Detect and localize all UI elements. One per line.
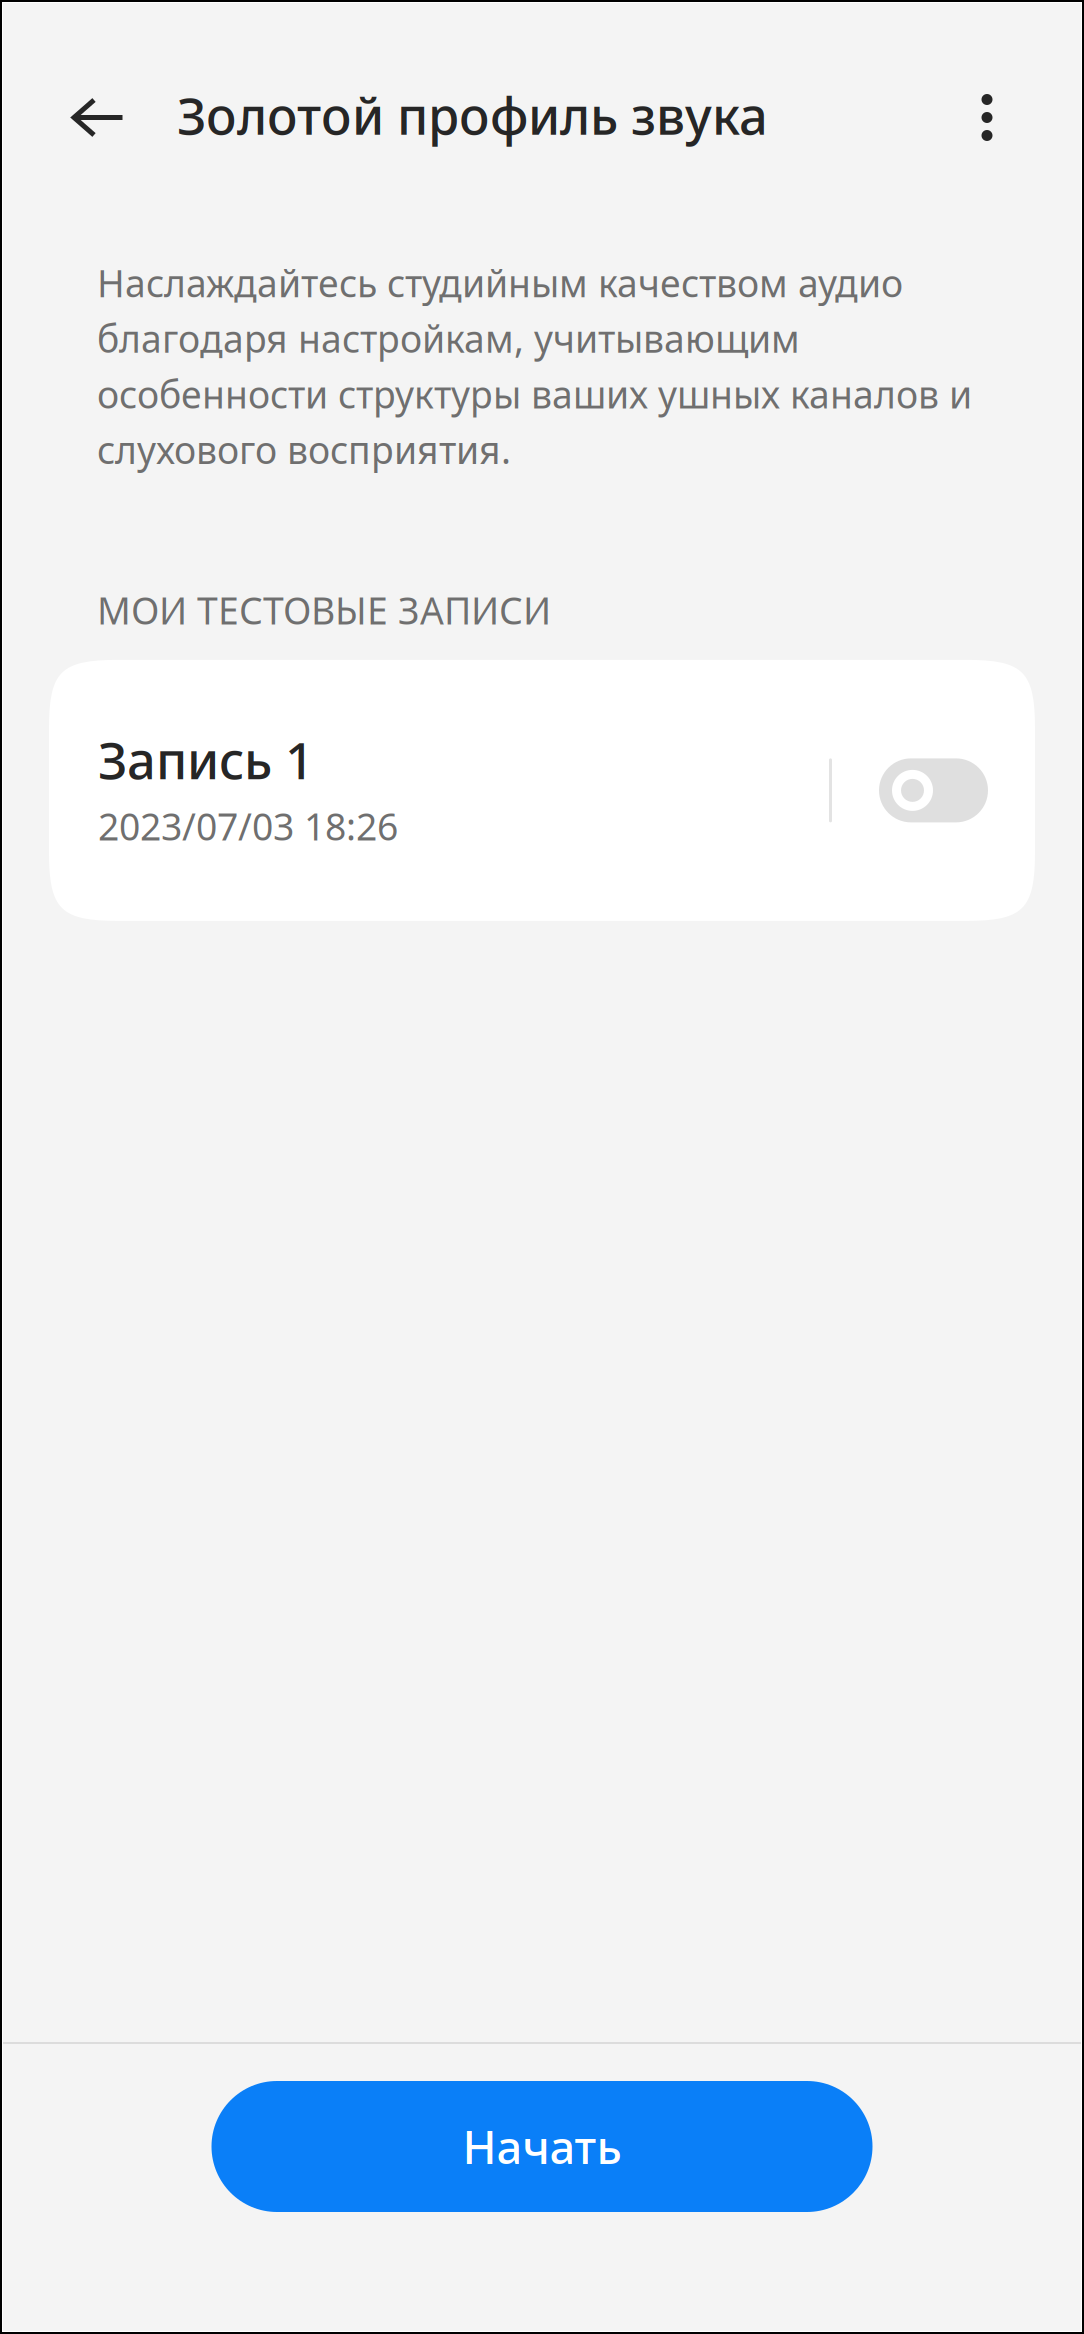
staticText: МОИ ТЕСТОВЫЕ ЗАПИСИ — [97, 585, 551, 635]
staticText: 2023/07/03 18:26 — [98, 801, 398, 851]
staticText: Запись 1 — [98, 726, 314, 793]
button[interactable]: Начать — [211, 2081, 872, 2212]
staticText: Золотой профиль звука — [177, 81, 768, 149]
staticText: Начать — [462, 2116, 621, 2177]
button[interactable]: Назад — [0, 0, 177, 235]
button[interactable]: Запись 1, выключено — [832, 660, 1035, 921]
staticText: Наслаждайтесь студийным качеством аудио … — [97, 258, 972, 474]
button[interactable]: Запись 1 — [49, 660, 829, 921]
button[interactable]: Ещё — [890, 0, 1084, 235]
